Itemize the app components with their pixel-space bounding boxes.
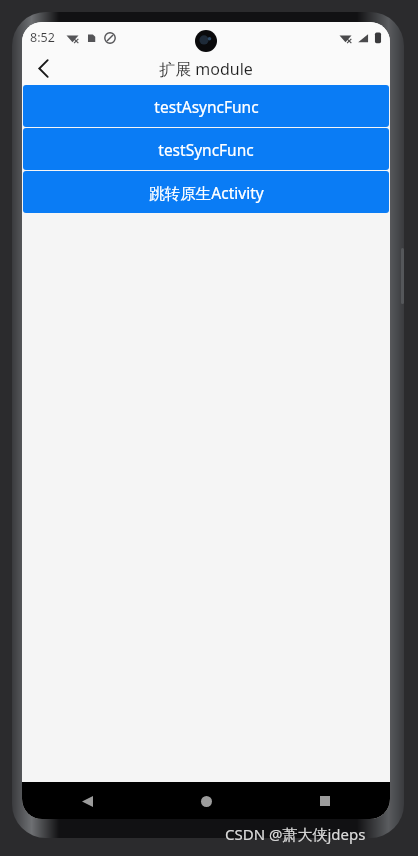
staticText: 扩展 module [159,58,253,80]
staticText: CSDN @萧大侠jdeps [225,824,366,844]
staticText: testAsyncFunc [154,96,259,117]
button[interactable]: Back [70,784,104,818]
button[interactable]: Back [22,52,64,85]
button[interactable]: testSyncFunc [23,128,389,170]
staticText: 8:52 [30,29,55,46]
button[interactable]: 跳转原生Activity [23,171,389,213]
button[interactable]: Recent apps [308,784,342,818]
button[interactable]: Home [189,784,223,818]
staticText: testSyncFunc [158,139,254,160]
button[interactable]: testAsyncFunc [23,85,389,127]
staticText: 跳转原生Activity [149,182,264,203]
